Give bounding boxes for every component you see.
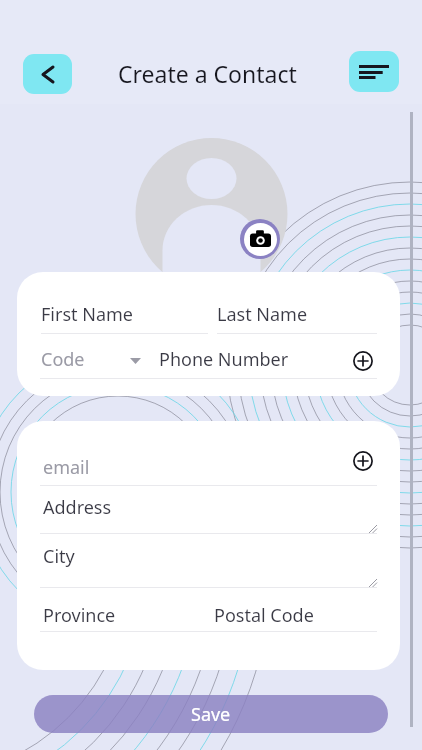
staticText: Code: [41, 347, 85, 372]
staticText: Save: [191, 702, 231, 727]
staticText: email: [43, 455, 90, 480]
staticText: Address: [43, 495, 112, 520]
staticText: First Name: [41, 302, 133, 327]
button[interactable]: Back: [23, 54, 72, 94]
button[interactable]: Add email: [353, 451, 373, 471]
staticText: Province: [43, 603, 116, 628]
staticText: Postal Code: [214, 603, 314, 628]
button[interactable]: Change photo: [240, 219, 280, 259]
button[interactable]: Menu: [349, 51, 399, 92]
staticText: Phone Number: [159, 347, 289, 372]
staticText: Last Name: [217, 302, 308, 327]
button[interactable]: Save: [34, 695, 388, 733]
staticText: City: [43, 544, 75, 569]
staticText: Create a Contact: [118, 58, 297, 89]
button[interactable]: Add phone number: [353, 351, 373, 371]
